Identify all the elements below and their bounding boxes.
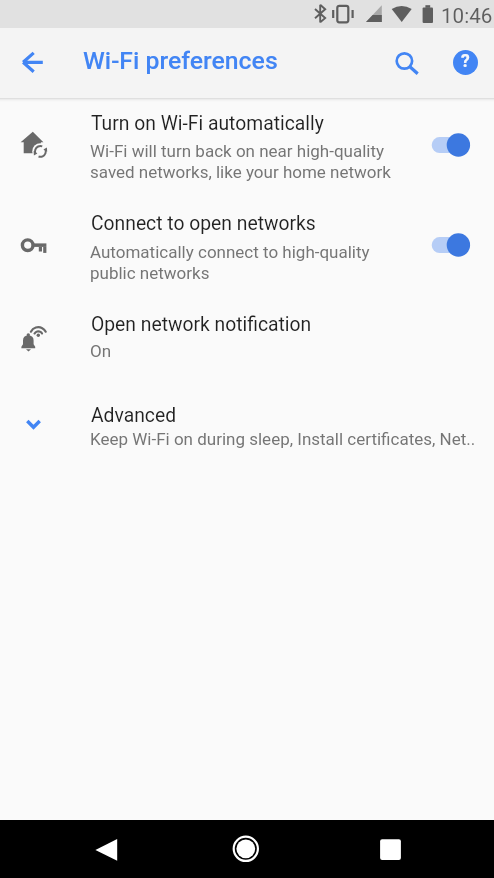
button[interactable] xyxy=(0,298,494,389)
staticText: Advanced xyxy=(91,404,177,427)
staticText: Keep Wi-Fi on during sleep, Install cert… xyxy=(90,429,476,449)
staticText: Wi-Fi preferences xyxy=(83,46,278,75)
staticText: 10:46 xyxy=(441,4,493,28)
button[interactable] xyxy=(70,820,140,878)
button[interactable] xyxy=(381,38,429,86)
button[interactable] xyxy=(428,229,474,261)
staticText: Automatically connect to high-quality xyxy=(90,242,370,262)
staticText: public networks xyxy=(90,263,210,283)
button[interactable] xyxy=(355,820,425,878)
staticText: Open network notification xyxy=(91,313,312,336)
staticText: Turn on Wi-Fi automatically xyxy=(91,112,324,135)
staticText: Connect to open networks xyxy=(91,212,316,235)
button[interactable] xyxy=(9,38,57,86)
staticText: On xyxy=(90,341,112,361)
staticText: ? xyxy=(461,51,470,72)
button[interactable] xyxy=(212,820,282,878)
button[interactable] xyxy=(0,198,494,298)
button[interactable] xyxy=(428,129,474,161)
button[interactable]: ? xyxy=(453,50,478,75)
button[interactable] xyxy=(0,389,494,464)
staticText: Wi-Fi will turn back on near high-qualit… xyxy=(90,141,385,161)
button[interactable] xyxy=(0,101,494,198)
staticText: saved networks, like your home network xyxy=(90,162,391,182)
